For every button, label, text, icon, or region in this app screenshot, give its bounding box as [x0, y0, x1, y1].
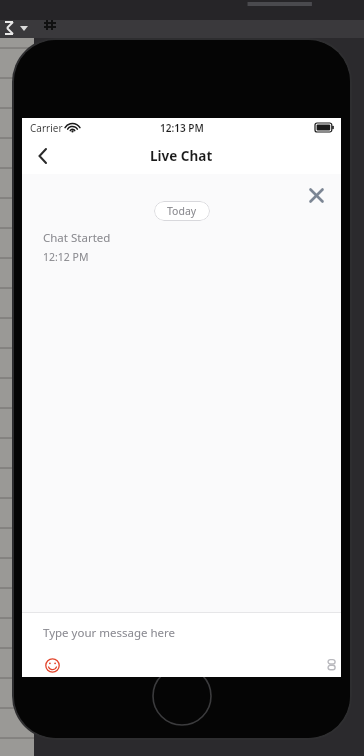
button[interactable]: Back	[22, 137, 62, 174]
staticText: Carrier	[30, 121, 63, 135]
staticText: 12:12 PM	[43, 250, 89, 264]
staticText: Chat Started	[43, 230, 111, 246]
staticText: 12:13 PM	[160, 121, 204, 135]
button[interactable]: Send	[325, 653, 339, 675]
button[interactable]: Type your message here	[22, 613, 341, 653]
staticText: Today	[167, 204, 197, 218]
staticText: Type your message here	[43, 625, 176, 641]
button[interactable]: Today	[154, 201, 210, 221]
staticText: Live Chat	[150, 147, 213, 165]
button[interactable]: Close chat	[299, 178, 333, 212]
button[interactable]: Insert emoji	[40, 653, 64, 677]
